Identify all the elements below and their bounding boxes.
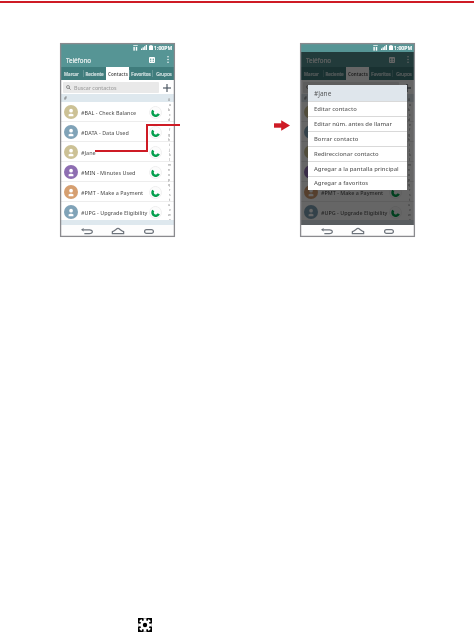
staticText: Buscar contactos	[74, 84, 117, 91]
staticText: v	[409, 207, 411, 212]
button[interactable]: #Jane	[60, 142, 175, 162]
button[interactable]: Call	[389, 166, 402, 179]
button[interactable]: Call	[389, 146, 402, 159]
staticText: d	[168, 117, 171, 122]
staticText: i	[169, 142, 170, 147]
staticText: r	[409, 187, 411, 192]
staticText: r	[169, 187, 171, 192]
staticText: Marcar	[64, 71, 79, 77]
button[interactable]: #PMT - Make a Payment	[60, 182, 175, 202]
button[interactable]: #DATA - Data Used	[60, 122, 175, 142]
staticText: v	[169, 207, 171, 212]
staticText: i	[409, 142, 410, 147]
button[interactable]: #BAL - Check Balance	[60, 102, 175, 122]
staticText: s	[169, 192, 171, 197]
button[interactable]: Call	[389, 106, 402, 119]
staticText: #MIN - Minutes Used	[321, 169, 389, 176]
button[interactable]: Buscar contactos	[63, 82, 159, 93]
staticText: h	[408, 137, 411, 142]
button[interactable]: Call	[389, 186, 402, 199]
button[interactable]: Grupos	[392, 67, 415, 80]
staticText: #	[304, 95, 307, 101]
button[interactable]: #Jane	[300, 142, 415, 162]
staticText: f	[169, 127, 171, 132]
staticText: g	[168, 132, 171, 137]
staticText: Favoritos	[371, 71, 391, 77]
button[interactable]: Recents	[381, 225, 397, 237]
staticText: o	[408, 172, 411, 177]
button[interactable]: Call	[149, 126, 162, 139]
button[interactable]: Back	[319, 225, 335, 237]
staticText: #Jane	[81, 149, 149, 156]
staticText: d	[408, 117, 411, 122]
button[interactable]: Back	[79, 225, 95, 237]
button[interactable]: #PMT - Make a Payment	[300, 182, 415, 202]
button[interactable]: More options	[401, 52, 415, 67]
button[interactable]: Contacts	[106, 67, 129, 80]
staticText: c	[169, 112, 171, 117]
staticText: Marcar	[304, 71, 319, 77]
button[interactable]: Favoritos	[129, 67, 152, 80]
button[interactable]: Call	[389, 126, 402, 139]
staticText: f	[409, 127, 411, 132]
button[interactable]: Marcar	[60, 67, 83, 80]
button[interactable]: Contacts	[346, 67, 369, 80]
button[interactable]: #UPG - Upgrade Eligibility	[300, 202, 415, 222]
staticText: Agregar a favoritos	[314, 179, 369, 187]
button[interactable]: #Jane	[308, 85, 407, 101]
button[interactable]: Call	[149, 106, 162, 119]
button[interactable]: Redireccionar contacto	[308, 146, 407, 161]
button[interactable]: #UPG - Upgrade Eligibility	[60, 202, 175, 222]
staticText: b	[408, 107, 411, 112]
button[interactable]: #BAL - Check Balance	[300, 102, 415, 122]
button[interactable]: Add contact	[160, 80, 174, 95]
staticText: Contacts	[108, 71, 128, 77]
button[interactable]: Agregar a favoritos	[308, 176, 407, 190]
staticText: #BAL - Check Balance	[81, 109, 149, 116]
button[interactable]: Agregar a la pantalla principal	[308, 161, 407, 176]
staticText: m	[408, 162, 412, 167]
button[interactable]: Call	[149, 146, 162, 159]
staticText: x	[409, 217, 411, 221]
staticText: o	[168, 172, 171, 177]
button[interactable]: Home	[350, 225, 366, 237]
button[interactable]: Favoritos	[369, 67, 392, 80]
button[interactable]: Call	[389, 206, 402, 219]
staticText: j	[169, 147, 170, 152]
button[interactable]: Editar núm. antes de llamar	[308, 116, 407, 131]
button[interactable]: Editar contacto	[308, 101, 407, 116]
button[interactable]: Reciente	[323, 67, 346, 80]
button[interactable]: Reciente	[83, 67, 106, 80]
staticText: e	[169, 122, 171, 127]
button[interactable]: Grupos	[152, 67, 175, 80]
button[interactable]: Call	[149, 166, 162, 179]
staticText: #Jane	[314, 89, 332, 98]
button[interactable]: #MIN - Minutes Used	[60, 162, 175, 182]
button[interactable]: Dialpad	[145, 52, 159, 67]
staticText: Grupos	[156, 71, 172, 77]
button[interactable]: #DATA - Data Used	[300, 122, 415, 142]
button[interactable]: Dialpad	[385, 52, 399, 67]
staticText: w	[408, 212, 411, 217]
staticText: m	[168, 162, 172, 167]
staticText: Redireccionar contacto	[314, 150, 379, 158]
button[interactable]: Borrar contacto	[308, 131, 407, 146]
staticText: Favoritos	[131, 71, 151, 77]
button[interactable]: Home	[110, 225, 126, 237]
staticText: l	[169, 157, 170, 162]
button[interactable]: Recents	[141, 225, 157, 237]
staticText: t	[409, 197, 411, 202]
staticText: Reciente	[325, 71, 344, 77]
button[interactable]: Buscar contactos	[303, 82, 399, 93]
button[interactable]: Call	[149, 206, 162, 219]
button[interactable]: Call	[149, 186, 162, 199]
staticText: c	[409, 112, 411, 117]
button[interactable]: #MIN - Minutes Used	[300, 162, 415, 182]
button[interactable]: More options	[161, 52, 175, 67]
staticText: l	[409, 157, 410, 162]
staticText: #DATA - Data Used	[81, 129, 149, 136]
button[interactable]: Add contact	[400, 80, 414, 95]
staticText: q	[168, 182, 171, 187]
button[interactable]: Marcar	[300, 67, 323, 80]
staticText: #UPG - Upgrade Eligibility	[81, 209, 149, 216]
